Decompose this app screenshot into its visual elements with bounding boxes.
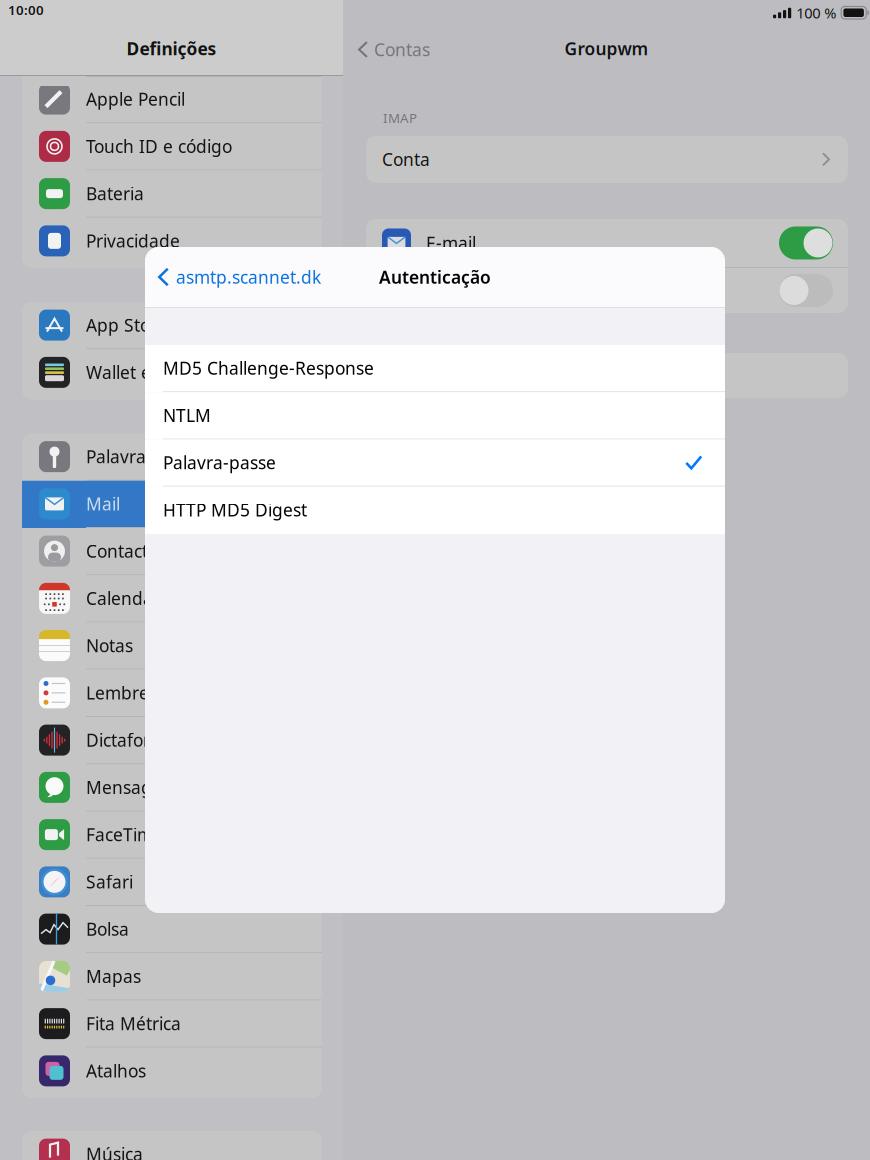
button[interactable]: Palavras-passe [22,433,322,481]
button[interactable]: Atalhos [22,1048,322,1095]
button[interactable]: Desativado [779,274,833,307]
button[interactable]: Calendário [22,575,322,622]
staticText: Mail [86,492,120,515]
staticText: FaceTime [86,823,163,846]
staticText: IMAP [383,109,417,127]
staticText: HTTP MD5 Digest [163,498,307,521]
staticText: Calendário [86,587,174,610]
button[interactable]: Contactos [22,528,322,575]
button[interactable]: Contas [343,31,430,68]
button[interactable]: MD5 Challenge-Response [145,345,725,392]
button[interactable]: Wallet e Apple Pay [22,349,322,396]
button[interactable]: Apple Pencil [22,76,322,123]
staticText: Palavra-passe [163,451,276,474]
button[interactable]: Mail [22,481,322,528]
staticText: E-mail [426,231,476,254]
staticText: Groupwm [564,37,648,60]
button[interactable]: NTLM [145,392,725,439]
staticText: Notas [86,634,133,657]
staticText: Lembretes [86,681,173,704]
staticText: Apple Pencil [86,88,185,111]
button[interactable]: Ativado [779,226,833,259]
staticText: NTLM [163,404,211,427]
button[interactable]: Mapas [22,953,322,1000]
staticText: 100 % [796,3,836,22]
staticText: Bolsa [86,918,129,941]
staticText: Contas [374,38,430,61]
staticText: Touch ID e código [86,135,232,158]
staticText: Conta [382,148,430,171]
button[interactable]: App Store [22,302,322,349]
staticText: Privacidade [86,229,180,252]
button[interactable]: Notas [22,622,322,670]
staticText: Palavras-passe [86,445,207,468]
staticText: Mensagens [86,776,181,799]
staticText: Wallet e Apple Pay [86,361,237,384]
button[interactable]: Conta [343,136,870,183]
staticText: App Store [86,314,167,337]
staticText: Atalhos [86,1059,146,1082]
staticText: Mapas [86,965,141,988]
button[interactable]: Touch ID e código [22,123,322,170]
button[interactable]: Safari [22,859,322,906]
button[interactable]: HTTP MD5 Digest [145,487,725,534]
button[interactable]: Bateria [22,170,322,218]
button[interactable]: Palavra-passe [145,439,725,487]
staticText: Definições [126,37,216,60]
button[interactable]: Lembretes [22,670,322,717]
button[interactable]: Dictafone [22,717,322,764]
staticText: Autenticação [379,265,491,288]
button[interactable]: Mensagens [22,764,322,811]
staticText: Dictafone [86,729,164,752]
staticText: Fita Métrica [86,1012,181,1035]
button[interactable]: Privacidade [22,218,322,265]
staticText: 10:00 [8,1,44,19]
button[interactable]: FaceTime [22,811,322,859]
staticText: Bateria [86,182,144,205]
button[interactable]: Bolsa [22,906,322,953]
staticText: Contactos [86,540,166,563]
staticText: asmtp.scannet.dk [176,265,321,288]
staticText: MD5 Challenge-Response [163,357,374,380]
button[interactable]: Música [22,1131,322,1160]
staticText: Safari [86,870,133,893]
button[interactable]: Fita Métrica [22,1000,322,1048]
staticText: Música [86,1143,143,1160]
button[interactable]: asmtp.scannet.dk [158,257,321,296]
